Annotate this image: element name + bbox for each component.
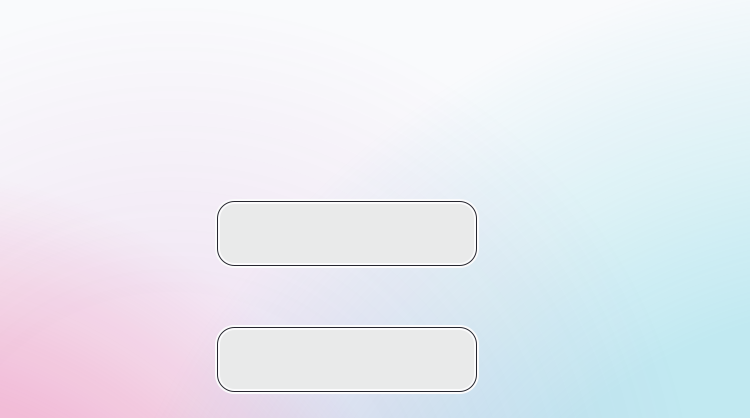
button[interactable]: [217, 201, 476, 265]
button[interactable]: [217, 327, 476, 391]
